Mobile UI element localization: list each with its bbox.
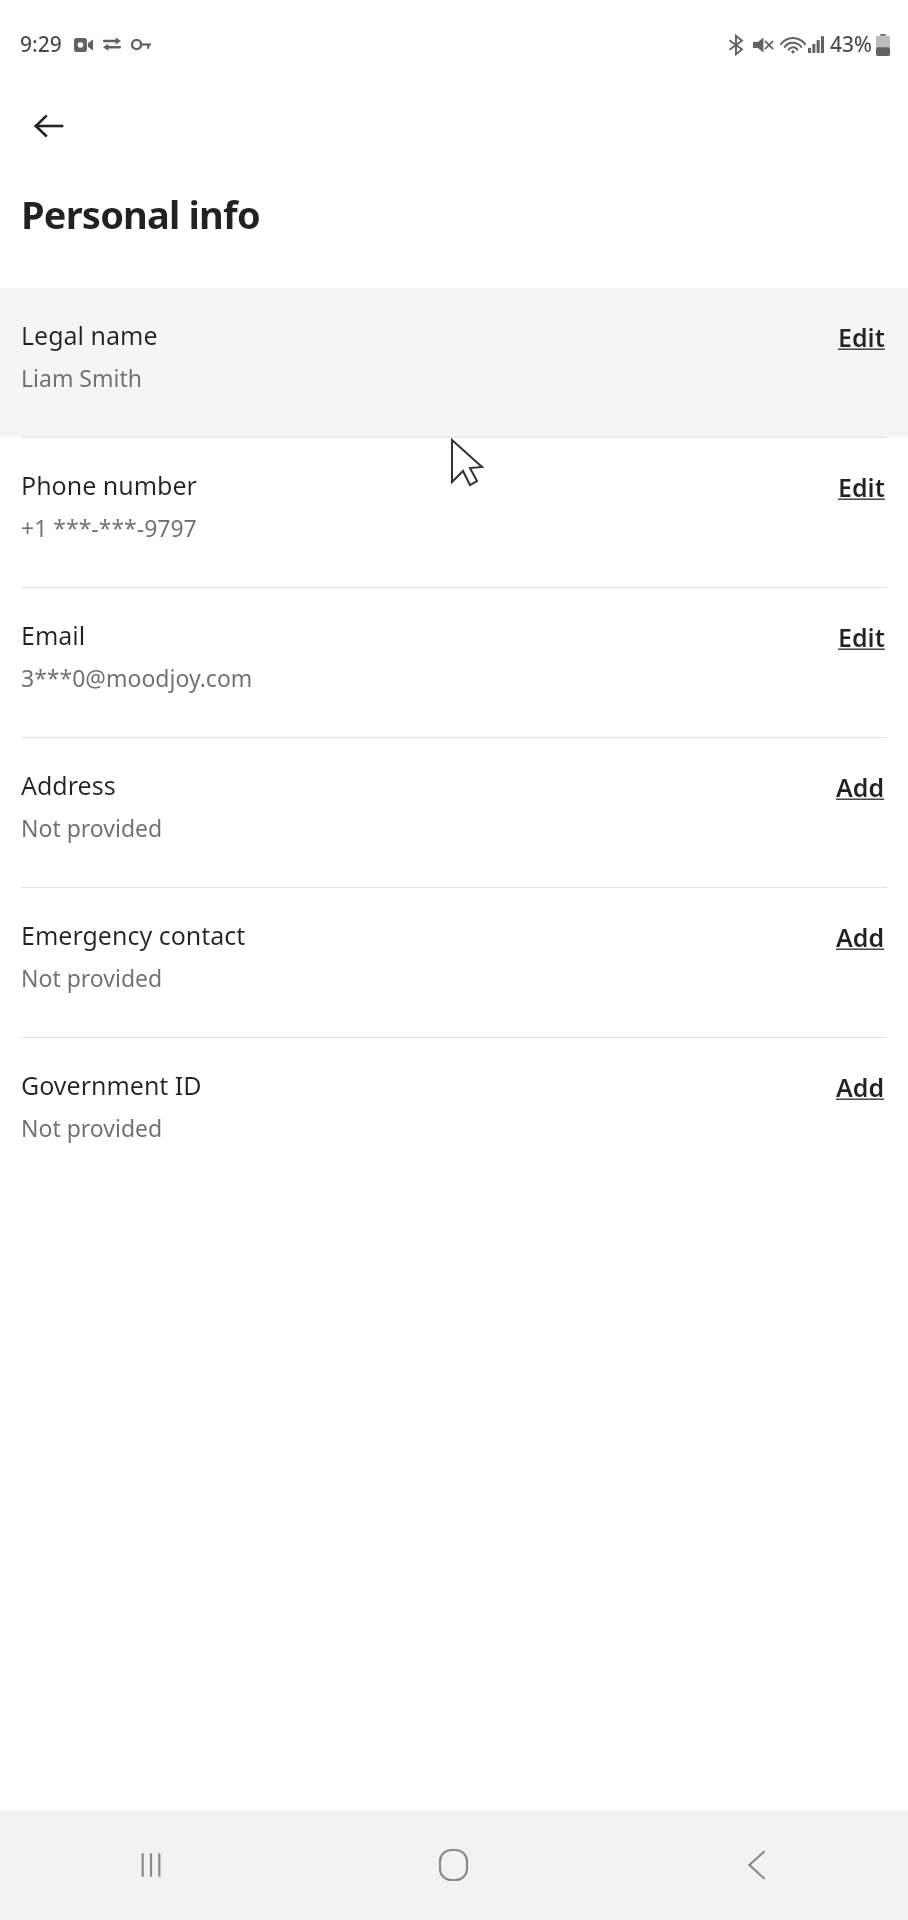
button[interactable]: Add	[834, 918, 887, 956]
button[interactable]: Recent apps	[0, 1810, 302, 1920]
staticText: +1 ***-***-9797	[21, 512, 197, 543]
staticText: Legal name	[21, 318, 158, 352]
staticText: Not provided	[21, 1112, 163, 1143]
button[interactable]: Legal name	[0, 288, 908, 437]
staticText: Add	[836, 770, 885, 804]
button[interactable]: Emergency contact	[0, 888, 908, 1037]
staticText: Edit	[838, 620, 885, 654]
staticText: Address	[21, 768, 116, 802]
button[interactable]: Phone number	[0, 438, 908, 587]
staticText: Emergency contact	[21, 918, 246, 952]
button[interactable]: Home	[302, 1810, 605, 1920]
button[interactable]: Add	[834, 768, 887, 806]
staticText: Government ID	[21, 1068, 202, 1102]
button[interactable]: Edit	[836, 318, 887, 356]
button[interactable]: Edit	[836, 618, 887, 656]
button[interactable]: Address	[0, 738, 908, 887]
staticText: Add	[836, 920, 885, 954]
button[interactable]: Email	[0, 588, 908, 737]
staticText: Not provided	[21, 962, 163, 993]
button[interactable]: Back	[20, 98, 76, 154]
button[interactable]: Back	[605, 1810, 908, 1920]
button[interactable]: Government ID	[0, 1038, 908, 1187]
staticText: 3***0@moodjoy.com	[21, 662, 253, 693]
button[interactable]: Add	[834, 1068, 887, 1106]
staticText: Add	[836, 1070, 885, 1104]
staticText: Edit	[838, 470, 885, 504]
staticText: Edit	[838, 320, 885, 354]
staticText: Liam Smith	[21, 362, 142, 393]
button[interactable]: Edit	[836, 468, 887, 506]
staticText: Phone number	[21, 468, 197, 502]
staticText: 43%	[830, 30, 872, 59]
staticText: Personal info	[21, 188, 260, 240]
staticText: Not provided	[21, 812, 163, 843]
staticText: 9:29	[20, 30, 62, 59]
staticText: Email	[21, 618, 86, 652]
